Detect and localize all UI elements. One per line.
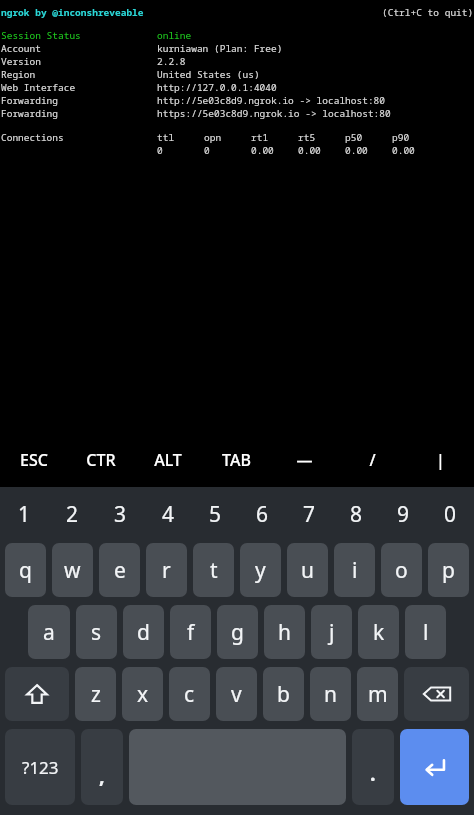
staticText: p <box>442 556 455 585</box>
staticText: n <box>324 680 337 709</box>
button[interactable]: t <box>193 543 234 597</box>
button[interactable]: n <box>310 667 351 721</box>
staticText: 0 <box>204 144 251 157</box>
button[interactable]: 7 <box>286 489 333 539</box>
staticText: e <box>114 556 126 585</box>
button[interactable]: h <box>264 605 305 659</box>
staticText: w <box>64 556 81 585</box>
staticText: Version <box>1 55 157 68</box>
button[interactable]: Backspace <box>404 667 469 721</box>
staticText: , <box>99 762 105 789</box>
staticText: (Ctrl+C to quit) <box>382 6 474 19</box>
button[interactable]: j <box>311 605 352 659</box>
button[interactable]: ?123 <box>5 729 75 805</box>
staticText: 0.00 <box>251 144 298 157</box>
other: Shift <box>24 681 50 707</box>
button[interactable]: . <box>352 729 394 805</box>
button[interactable]: Shift <box>5 667 69 721</box>
button[interactable]: u <box>287 543 328 597</box>
button[interactable]: ESC <box>0 433 67 487</box>
staticText: p50 <box>345 131 392 144</box>
staticText: 8 <box>350 500 363 529</box>
button[interactable]: i <box>334 543 375 597</box>
button[interactable]: m <box>357 667 398 721</box>
button[interactable]: / <box>338 433 406 487</box>
button[interactable]: v <box>216 667 257 721</box>
staticText: kurniawan (Plan: Free) <box>157 42 283 55</box>
staticText: ?123 <box>22 756 59 779</box>
staticText: t <box>210 556 218 585</box>
staticText: r <box>162 556 171 585</box>
button[interactable]: 3 <box>96 489 144 539</box>
button[interactable]: c <box>169 667 210 721</box>
staticText: o <box>395 556 408 585</box>
button[interactable]: r <box>146 543 187 597</box>
button[interactable]: d <box>123 605 164 659</box>
button[interactable]: CTR <box>67 433 134 487</box>
button[interactable]: 2 <box>48 489 96 539</box>
staticText: c <box>184 680 195 709</box>
button[interactable]: g <box>217 605 258 659</box>
staticText: ngrok by @inconshreveable <box>1 6 144 19</box>
button[interactable]: 0 <box>427 489 474 539</box>
button[interactable]: p <box>428 543 469 597</box>
staticText: k <box>373 618 385 647</box>
staticText: f <box>187 618 195 647</box>
staticText: y <box>255 556 266 585</box>
button[interactable]: 8 <box>333 489 380 539</box>
button[interactable]: , <box>81 729 123 805</box>
button[interactable]: ALT <box>134 433 202 487</box>
staticText: 7 <box>303 500 316 529</box>
staticText: 0.00 <box>392 144 439 157</box>
staticText: s <box>91 618 102 647</box>
staticText: Web Interface <box>1 81 157 94</box>
staticText: . <box>370 760 376 787</box>
staticText: p90 <box>392 131 439 144</box>
button[interactable]: z <box>75 667 116 721</box>
button[interactable]: x <box>122 667 163 721</box>
button[interactable]: k <box>358 605 399 659</box>
staticText: http://5e03c8d9.ngrok.io -> localhost:80 <box>157 94 386 107</box>
staticText: 2.2.8 <box>157 55 186 68</box>
button[interactable]: Enter <box>400 729 469 805</box>
staticText: 5 <box>209 500 222 529</box>
button[interactable]: s <box>76 605 117 659</box>
staticText: d <box>137 618 150 647</box>
button[interactable]: l <box>405 605 446 659</box>
staticText: m <box>368 680 388 709</box>
button[interactable]: 5 <box>192 489 239 539</box>
staticText: b <box>277 680 290 709</box>
staticText: 0 <box>157 144 204 157</box>
staticText: 0 <box>444 500 457 529</box>
staticText: Account <box>1 42 157 55</box>
staticText: Session Status <box>1 29 157 42</box>
staticText: opn <box>204 131 251 144</box>
staticText: ttl <box>157 131 204 144</box>
staticText: https://5e03c8d9.ngrok.io -> localhost:8… <box>157 107 391 120</box>
staticText: a <box>43 618 55 647</box>
staticText: Forwarding <box>1 107 157 120</box>
button[interactable]: 6 <box>239 489 286 539</box>
button[interactable]: 9 <box>380 489 427 539</box>
staticText: Forwarding <box>1 94 157 107</box>
button[interactable]: | <box>406 433 474 487</box>
button[interactable]: y <box>240 543 281 597</box>
button[interactable]: — <box>270 433 338 487</box>
button[interactable]: TAB <box>202 433 270 487</box>
button[interactable]: 4 <box>144 489 192 539</box>
staticText: rt5 <box>298 131 345 144</box>
staticText: q <box>19 556 32 585</box>
staticText: x <box>137 680 149 709</box>
button[interactable]: f <box>170 605 211 659</box>
button[interactable]: 1 <box>0 489 48 539</box>
staticText: 9 <box>397 500 410 529</box>
button[interactable]: b <box>263 667 304 721</box>
button[interactable]: q <box>5 543 46 597</box>
button[interactable]: o <box>381 543 422 597</box>
button[interactable]: a <box>28 605 70 659</box>
button[interactable]: e <box>99 543 140 597</box>
staticText: g <box>231 618 244 647</box>
staticText: Region <box>1 68 157 81</box>
button[interactable]: w <box>52 543 93 597</box>
